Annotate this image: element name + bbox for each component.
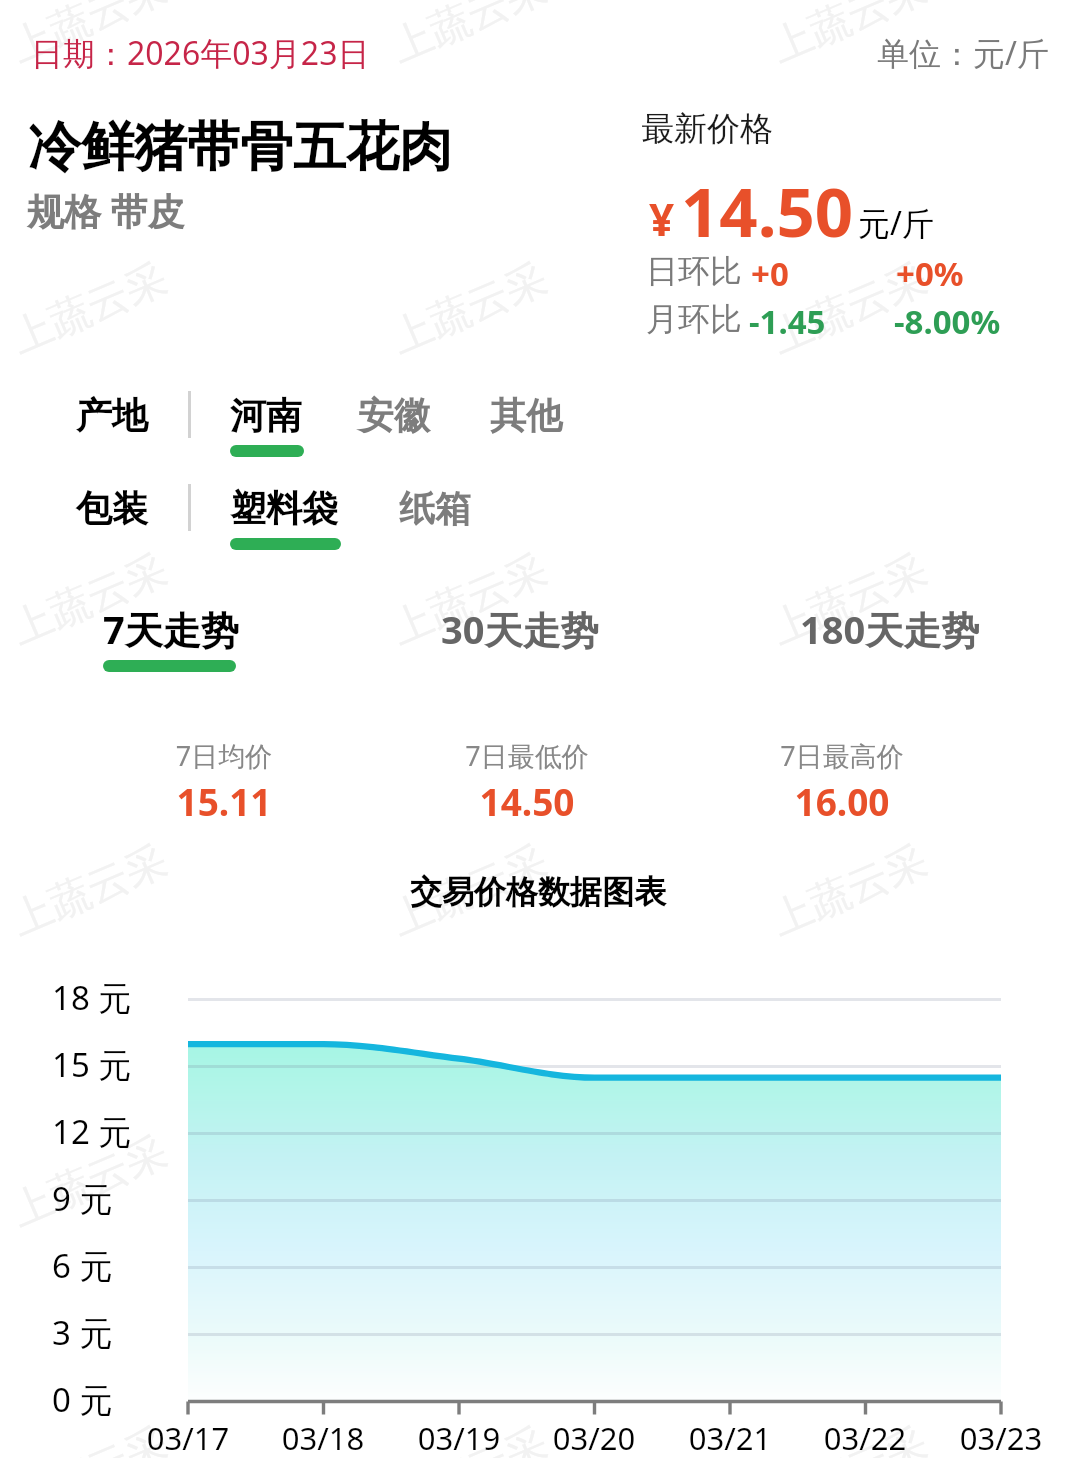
button[interactable]: 7天走势 xyxy=(101,596,242,682)
staticText: 03/18 xyxy=(243,1417,403,1458)
button[interactable]: 30天走势 xyxy=(439,596,602,682)
staticText: +0% xyxy=(896,251,964,296)
staticText: 上蔬云采 xyxy=(4,253,175,365)
staticText: 上蔬云采 xyxy=(4,1126,175,1238)
button[interactable]: 180天走势 xyxy=(798,596,984,682)
staticText: ¥ xyxy=(649,189,675,249)
staticText: 元/斤 xyxy=(858,201,934,245)
staticText: -8.00% xyxy=(894,299,1001,344)
staticText: 7日最高价 xyxy=(692,737,992,774)
staticText: 7日最低价 xyxy=(377,737,677,774)
staticText: +0 xyxy=(751,251,789,296)
staticText: 上蔬云采 xyxy=(764,253,935,365)
staticText: 16.00 xyxy=(692,776,992,826)
staticText: 上蔬云采 xyxy=(764,0,935,74)
staticText: 0 元 xyxy=(52,1377,192,1422)
staticText: 上蔬云采 xyxy=(384,1126,555,1238)
staticText: 03/21 xyxy=(650,1417,810,1458)
staticText: 包装 xyxy=(76,486,148,531)
staticText: 上蔬云采 xyxy=(384,253,555,365)
staticText: -1.45 xyxy=(749,299,826,344)
staticText: 交易价格数据图表 xyxy=(238,872,838,912)
staticText: 18 元 xyxy=(52,975,192,1020)
staticText: 塑料袋 xyxy=(230,486,338,531)
staticText: 6 元 xyxy=(52,1243,192,1288)
staticText: 上蔬云采 xyxy=(4,1417,175,1458)
staticText: 03/22 xyxy=(785,1417,945,1458)
staticText: 纸箱 xyxy=(399,486,471,531)
staticText: 单位：元/斤 xyxy=(0,31,1049,75)
staticText: 上蔬云采 xyxy=(384,0,555,74)
button[interactable]: 其他 xyxy=(488,382,566,468)
staticText: 7天走势 xyxy=(103,603,239,655)
staticText: 日期：2026年03月23日 xyxy=(31,31,370,75)
staticText: 上蔬云采 xyxy=(4,0,175,74)
staticText: 12 元 xyxy=(52,1109,192,1154)
staticText: 产地 xyxy=(76,393,148,438)
staticText: 30天走势 xyxy=(441,603,599,655)
staticText: 14.50 xyxy=(681,165,854,256)
staticText: 规格 带皮 xyxy=(27,185,185,236)
staticText: 15.11 xyxy=(74,776,374,826)
staticText: 7日均价 xyxy=(74,737,374,774)
staticText: 上蔬云采 xyxy=(764,544,935,656)
staticText: 9 元 xyxy=(52,1176,192,1221)
staticText: 冷鲜猪带骨五花肉 xyxy=(28,114,452,181)
button[interactable]: 河南 xyxy=(228,382,306,468)
staticText: 上蔬云采 xyxy=(4,544,175,656)
staticText: 上蔬云采 xyxy=(4,835,175,947)
staticText: 15 元 xyxy=(52,1042,192,1087)
staticText: 月环比 xyxy=(646,299,742,339)
staticText: 安徽 xyxy=(358,393,430,438)
staticText: 180天走势 xyxy=(800,603,980,655)
staticText: 03/23 xyxy=(921,1417,1080,1458)
staticText: 上蔬云采 xyxy=(384,1417,555,1458)
staticText: 河南 xyxy=(230,393,302,438)
staticText: 上蔬云采 xyxy=(764,1126,935,1238)
staticText: 3 元 xyxy=(52,1310,192,1355)
staticText: 日环比 xyxy=(646,251,742,291)
staticText: 其他 xyxy=(490,393,562,438)
staticText: 最新价格 xyxy=(641,108,773,150)
staticText: 上蔬云采 xyxy=(384,544,555,656)
staticText: 03/17 xyxy=(108,1417,268,1458)
staticText: 上蔬云采 xyxy=(764,1417,935,1458)
staticText: 03/19 xyxy=(379,1417,539,1458)
button[interactable]: 纸箱 xyxy=(397,475,475,561)
button[interactable]: 塑料袋 xyxy=(228,475,343,561)
staticText: 上蔬云采 xyxy=(764,835,935,947)
staticText: 03/20 xyxy=(514,1417,674,1458)
staticText: 14.50 xyxy=(377,776,677,826)
button[interactable]: 安徽 xyxy=(356,382,434,468)
staticText: 上蔬云采 xyxy=(384,835,555,947)
